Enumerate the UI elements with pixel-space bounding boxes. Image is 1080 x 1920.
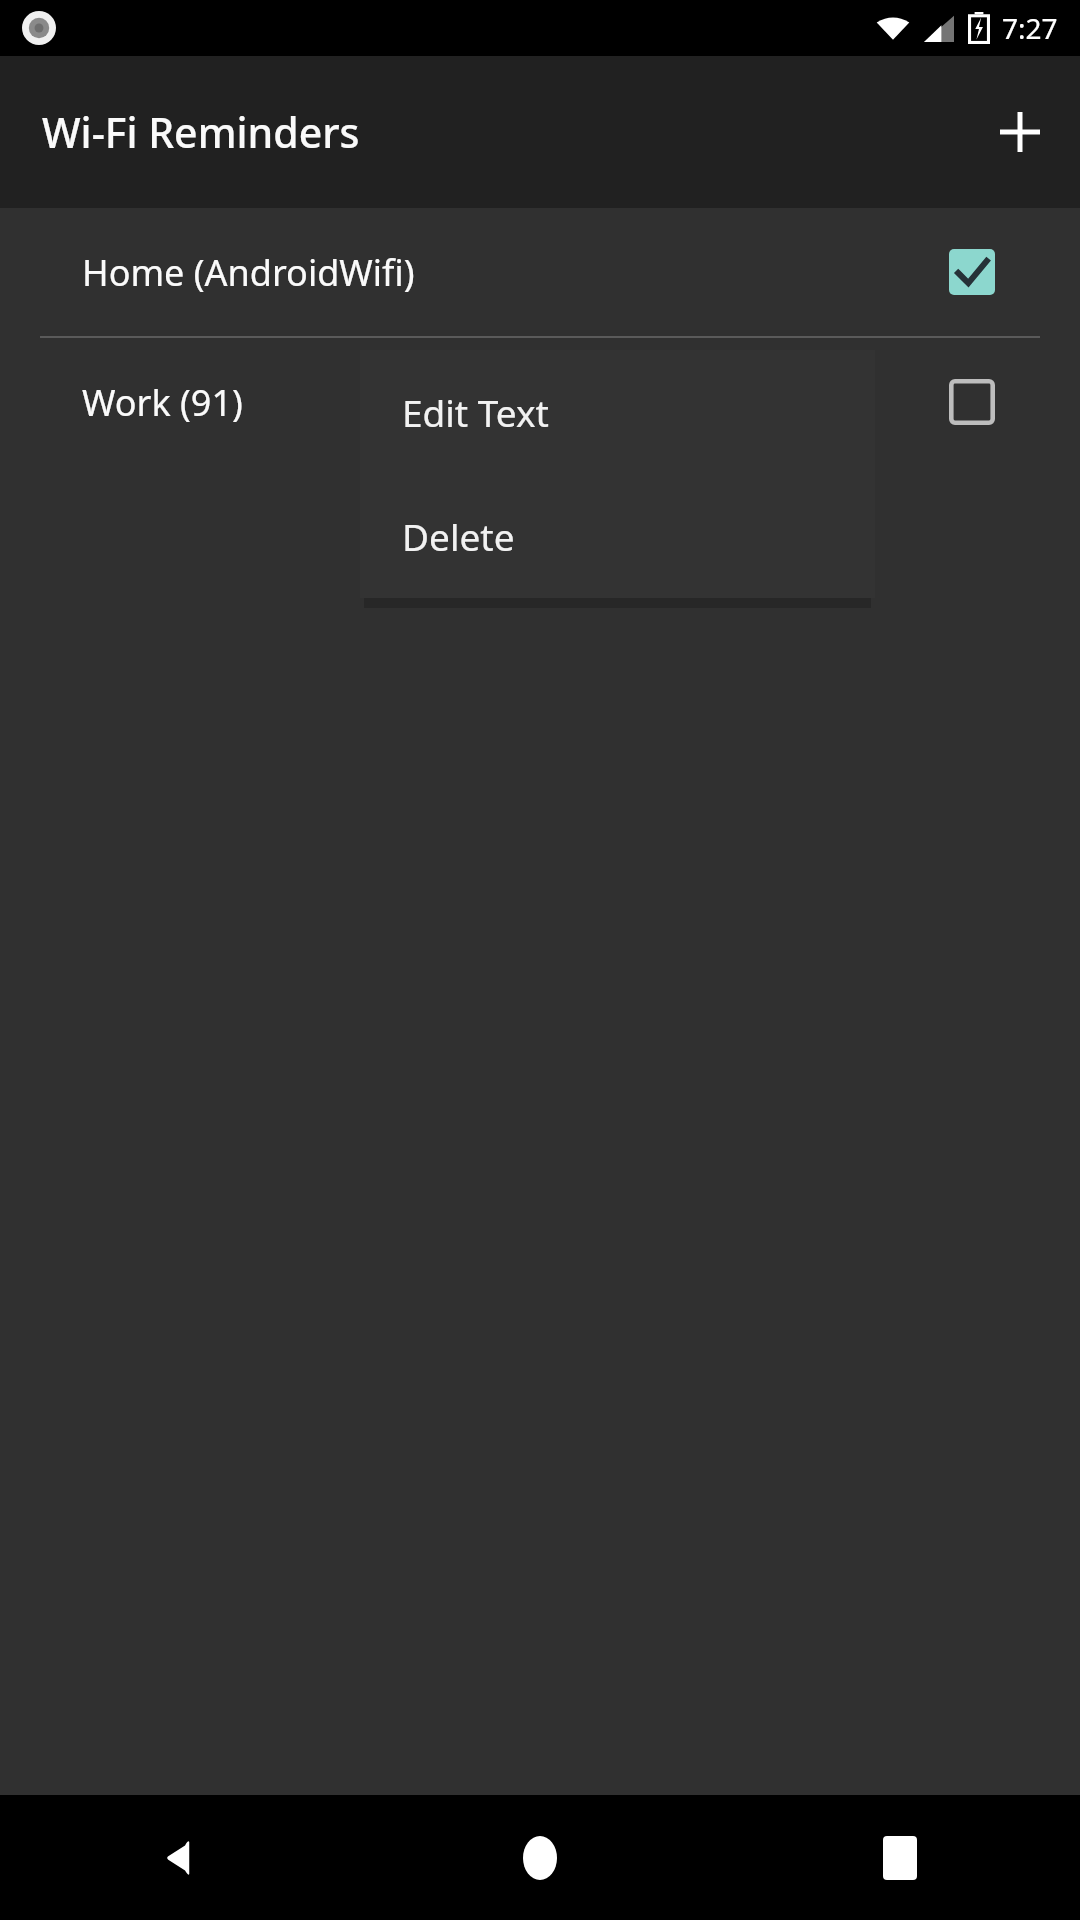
staticText: Edit Text <box>402 387 549 437</box>
staticText: Home (AndroidWifi) <box>82 248 415 297</box>
button[interactable]: Unchecked <box>944 374 1000 430</box>
button[interactable]: Home (AndroidWifi) <box>0 208 1080 336</box>
staticText: Delete <box>402 511 515 561</box>
button[interactable]: Edit Text <box>360 350 875 474</box>
button[interactable]: Add reminder <box>980 92 1060 172</box>
button[interactable]: Home <box>360 1795 720 1920</box>
staticText: Work (91) <box>82 378 243 427</box>
staticText: Wi-Fi Reminders <box>42 104 360 160</box>
staticText: 7:27 <box>1002 9 1058 47</box>
button[interactable]: Back <box>0 1795 360 1920</box>
button[interactable]: Checked <box>944 244 1000 300</box>
button[interactable]: Delete <box>360 474 875 598</box>
button[interactable]: Recent apps <box>720 1795 1080 1920</box>
button[interactable]: Work (91) <box>0 338 1080 466</box>
